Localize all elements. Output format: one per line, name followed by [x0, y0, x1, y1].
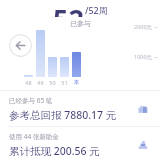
staticText: 50	[49, 79, 56, 86]
staticText: 52	[53, 0, 84, 17]
other: 总回报	[135, 101, 151, 117]
button[interactable]	[60, 57, 69, 77]
button[interactable]: 返回	[9, 34, 32, 57]
staticText: 51	[61, 79, 68, 86]
button[interactable]	[36, 30, 45, 77]
staticText: 49	[37, 79, 44, 86]
staticText: 已参与	[70, 19, 91, 28]
staticText: 本周	[72, 79, 81, 86]
staticText: /52周	[85, 4, 108, 16]
button[interactable]	[48, 57, 57, 77]
button[interactable]: 已经参与 65 笔	[0, 91, 160, 126]
staticText: 使用 44 张新助金	[9, 132, 59, 141]
other: 抵现	[135, 137, 151, 153]
button[interactable]	[72, 52, 81, 77]
staticText: 1000元	[134, 53, 153, 61]
staticText: 48	[25, 79, 32, 86]
staticText: 累计抵现 200.56 元	[9, 144, 100, 158]
button[interactable]	[24, 75, 33, 77]
staticText: 2000元	[134, 23, 153, 31]
button[interactable]: 使用 44 张新助金	[0, 127, 160, 160]
staticText: 已经参与 65 笔	[9, 96, 53, 105]
staticText: 参考总回报 7880.17 元	[9, 108, 117, 122]
